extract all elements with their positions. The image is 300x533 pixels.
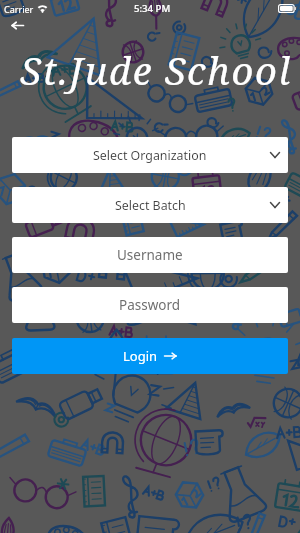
staticText: Carrier — [4, 3, 34, 15]
staticText: Username — [117, 246, 183, 264]
staticText: 5:34 PM — [134, 2, 171, 15]
staticText: St.Jude School — [20, 44, 292, 95]
button[interactable]: Login — [12, 338, 288, 374]
button[interactable]: Password — [12, 287, 288, 323]
staticText: Password — [119, 296, 181, 314]
staticText: Login — [123, 347, 158, 365]
button[interactable]: Select Batch — [12, 187, 288, 223]
button[interactable]: Back — [5, 13, 29, 37]
button[interactable]: Username — [12, 237, 288, 273]
staticText: Select Batch — [115, 197, 186, 214]
staticText: Select Organization — [93, 147, 207, 164]
button[interactable]: Select Organization — [12, 137, 288, 173]
